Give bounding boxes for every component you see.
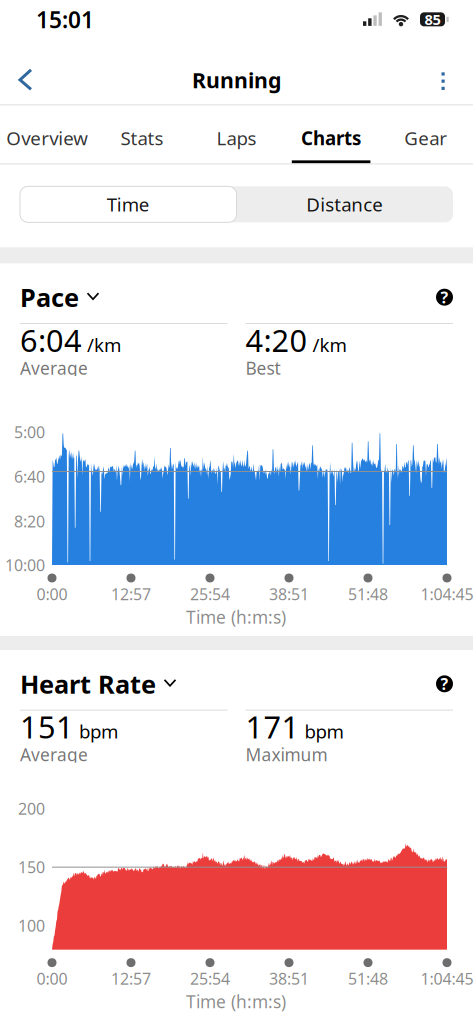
staticText: 51:48 — [348, 968, 388, 989]
staticText: 25:54 — [190, 583, 230, 605]
staticText: /km — [82, 332, 121, 357]
staticText: 85 — [424, 10, 440, 29]
staticText: 5:00 — [14, 421, 45, 443]
staticText: Overview — [6, 126, 88, 150]
button[interactable]: Gear — [378, 105, 473, 163]
staticText: Average — [20, 356, 88, 379]
staticText: Running — [192, 66, 281, 94]
staticText: Charts — [301, 126, 361, 150]
button[interactable]: Heart Rate — [20, 667, 176, 701]
staticText: Heart Rate — [20, 667, 156, 701]
button[interactable]: Laps — [189, 105, 284, 163]
staticText: Distance — [306, 192, 383, 217]
staticText: Gear — [404, 126, 447, 150]
staticText: 6:04 — [20, 320, 82, 360]
staticText: 15:01 — [36, 4, 94, 34]
staticText: Laps — [216, 126, 256, 150]
staticText: 0:00 — [36, 583, 67, 605]
staticText: Average — [20, 743, 88, 766]
button[interactable]: Help — [436, 675, 453, 692]
button[interactable]: Pace — [20, 280, 99, 314]
staticText: ? — [440, 673, 448, 694]
staticText: 0:00 — [36, 968, 67, 989]
button[interactable]: More options — [420, 56, 466, 104]
button[interactable]: Back — [7, 56, 53, 104]
button[interactable]: Charts — [284, 105, 378, 163]
button[interactable]: Distance — [236, 186, 453, 222]
staticText: bpm — [299, 719, 343, 744]
staticText: 1:04:45 — [420, 583, 473, 605]
staticText: 151 — [20, 706, 74, 747]
staticText: 12:57 — [111, 968, 151, 989]
staticText: /km — [307, 332, 346, 357]
staticText: Time (h:m:s) — [186, 605, 286, 628]
staticText: 38:51 — [269, 968, 309, 989]
staticText: 8:20 — [14, 511, 45, 532]
staticText: bpm — [74, 719, 118, 744]
staticText: 200 — [18, 798, 45, 819]
staticText: Pace — [20, 280, 79, 314]
staticText: Time — [107, 192, 150, 217]
staticText: ? — [440, 287, 448, 308]
staticText: 171 — [245, 706, 299, 747]
staticText: 150 — [18, 856, 45, 878]
button[interactable]: Stats — [95, 105, 189, 163]
staticText: 51:48 — [348, 583, 388, 605]
button[interactable]: Overview — [0, 105, 95, 163]
staticText: Stats — [120, 126, 163, 150]
staticText: Time (h:m:s) — [186, 990, 286, 1013]
staticText: 25:54 — [190, 968, 230, 989]
staticText: 10:00 — [5, 554, 45, 576]
staticText: 6:40 — [14, 466, 45, 487]
staticText: 12:57 — [111, 583, 151, 605]
staticText: 100 — [18, 915, 45, 936]
button[interactable]: Time — [20, 186, 236, 222]
staticText: 4:20 — [245, 320, 307, 360]
staticText: Maximum — [245, 743, 327, 766]
staticText: 1:04:45 — [420, 968, 473, 989]
button[interactable]: Help — [436, 289, 453, 306]
staticText: 38:51 — [269, 583, 309, 605]
staticText: Best — [245, 356, 280, 379]
